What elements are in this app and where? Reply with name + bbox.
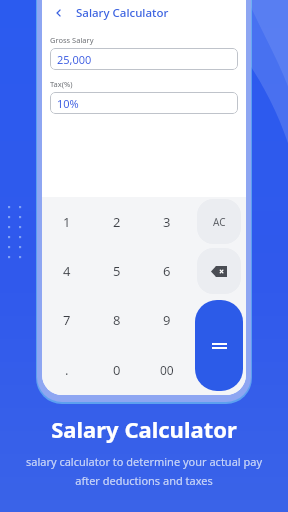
staticText: 1 [63, 213, 71, 231]
button[interactable]: 5 [92, 246, 142, 295]
staticText: 2 [113, 213, 121, 231]
staticText: 6 [163, 262, 171, 280]
button[interactable]: 6 [142, 246, 192, 295]
staticText: 3 [163, 213, 171, 231]
button[interactable]: 9 [142, 295, 192, 345]
button[interactable]: AC [197, 199, 241, 244]
staticText: 0 [113, 361, 121, 379]
staticText: 4 [63, 262, 71, 280]
button[interactable]: 7 [42, 295, 92, 345]
staticText: AC [213, 215, 226, 229]
button[interactable]: . [42, 345, 92, 395]
staticText: 00 [160, 362, 174, 378]
staticText: 5 [113, 262, 121, 280]
staticText: 25,000 [57, 52, 92, 67]
staticText: 7 [63, 311, 71, 329]
button[interactable]: 4 [42, 246, 92, 295]
staticText: . [65, 361, 69, 379]
staticText: salary calculator to determine your actu… [20, 454, 268, 488]
button[interactable]: 10% [50, 92, 238, 114]
button[interactable]: 3 [142, 197, 192, 246]
button[interactable]: 00 [142, 345, 192, 395]
staticText: Tax(%) [50, 79, 73, 89]
staticText: 9 [163, 311, 171, 329]
staticText: Salary Calculator [51, 414, 237, 444]
button[interactable]: Back [48, 2, 70, 24]
button[interactable]: 1 [42, 197, 92, 246]
button[interactable]: Equals [195, 300, 243, 391]
staticText: Salary Calculator [76, 5, 169, 21]
button[interactable]: 0 [92, 345, 142, 395]
staticText: Gross Salary [50, 35, 94, 45]
staticText: 10% [57, 96, 79, 111]
button[interactable]: 2 [92, 197, 142, 246]
button[interactable]: 25,000 [50, 48, 238, 70]
button[interactable]: 8 [92, 295, 142, 345]
staticText: 8 [113, 311, 121, 329]
button[interactable]: Backspace [197, 248, 241, 294]
